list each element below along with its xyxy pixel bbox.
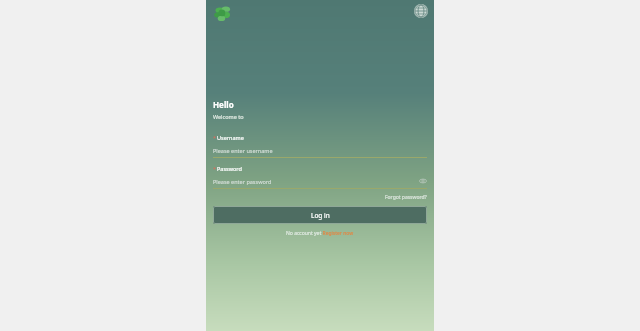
- staticText: Log in: [311, 211, 330, 220]
- button[interactable]: Logo: [212, 3, 234, 25]
- staticText: *: [213, 134, 217, 141]
- staticText: Welcome to: [213, 113, 244, 120]
- staticText: Please enter password: [213, 178, 272, 185]
- button[interactable]: No account yet Register now: [286, 230, 354, 237]
- staticText: No account yet Register now: [286, 230, 354, 237]
- button[interactable]: Log in: [213, 206, 427, 224]
- staticText: Hello: [213, 99, 234, 110]
- staticText: Forgot password?: [385, 194, 427, 201]
- staticText: Password: [217, 165, 242, 172]
- staticText: Username: [217, 134, 244, 141]
- staticText: *: [213, 165, 217, 172]
- staticText: Please enter username: [213, 147, 273, 154]
- button[interactable]: Show password: [419, 177, 427, 185]
- button[interactable]: Language: [414, 4, 428, 18]
- button[interactable]: Forgot password?: [385, 194, 427, 201]
